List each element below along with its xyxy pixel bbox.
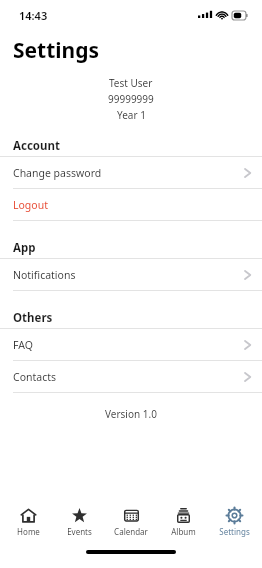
staticText: Change password: [13, 166, 102, 180]
staticText: 99999999: [108, 92, 154, 106]
staticText: Home: [17, 526, 40, 537]
staticText: Album: [171, 526, 196, 537]
staticText: Settings: [13, 36, 100, 65]
staticText: Logout: [13, 198, 48, 212]
staticText: Notifications: [13, 268, 76, 282]
button[interactable]: FAQ: [0, 329, 262, 360]
button[interactable]: Change password: [0, 157, 262, 188]
button[interactable]: Notifications: [0, 259, 262, 290]
staticText: Calendar: [114, 526, 148, 537]
staticText: Account: [13, 138, 60, 154]
staticText: FAQ: [13, 338, 33, 352]
staticText: Settings: [219, 526, 250, 537]
button[interactable]: Logout: [0, 189, 262, 220]
staticText: Year 1: [117, 108, 146, 122]
button[interactable]: Settings: [210, 507, 258, 537]
staticText: Others: [13, 310, 53, 326]
staticText: 14:43: [19, 8, 48, 23]
staticText: Events: [67, 526, 92, 537]
button[interactable]: Events: [55, 507, 103, 537]
staticText: Test User: [109, 76, 153, 90]
staticText: Version 1.0: [105, 407, 157, 421]
staticText: Contacts: [13, 370, 57, 384]
button[interactable]: Home: [4, 507, 52, 537]
staticText: App: [13, 240, 36, 256]
button[interactable]: Calendar: [107, 507, 155, 537]
button[interactable]: Album: [159, 507, 207, 537]
button[interactable]: Contacts: [0, 361, 262, 392]
